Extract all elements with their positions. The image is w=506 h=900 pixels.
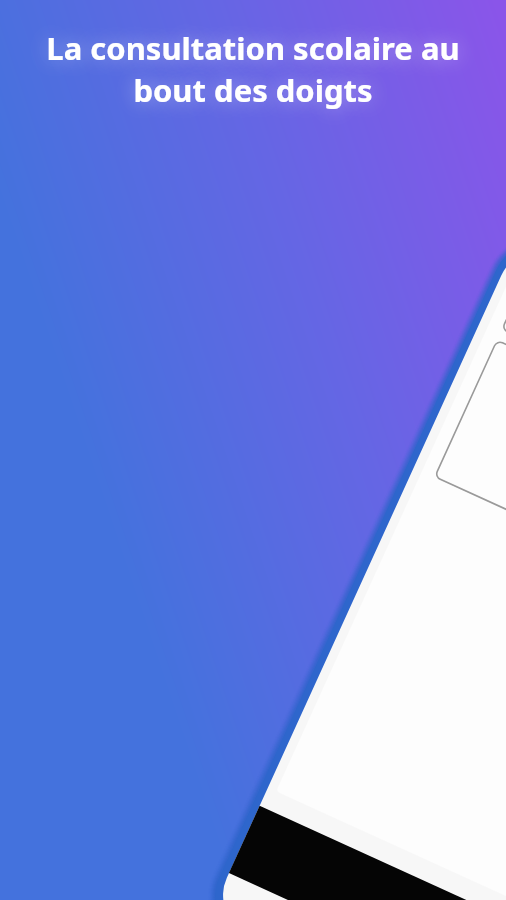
staticText: La consultation scolaire au bout des doi… xyxy=(46,27,460,111)
